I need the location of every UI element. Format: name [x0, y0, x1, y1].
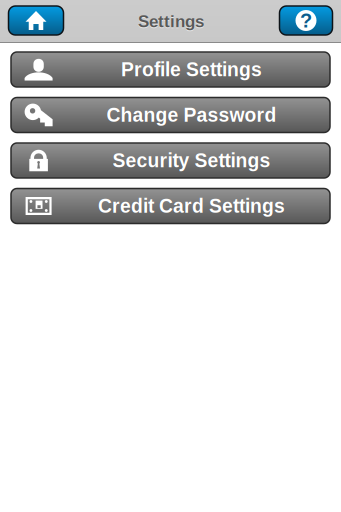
staticText: Credit Card Settings — [98, 195, 285, 217]
button[interactable]: Credit Card Settings — [11, 188, 330, 223]
staticText: Profile Settings — [121, 59, 262, 80]
staticText: Settings — [138, 13, 204, 32]
button[interactable]: Home — [8, 6, 63, 35]
staticText: Change Password — [106, 104, 276, 126]
staticText: ? — [300, 9, 312, 32]
staticText: Settings — [138, 12, 204, 31]
staticText: Security Settings — [112, 150, 270, 171]
button[interactable]: Security Settings — [11, 143, 330, 178]
button[interactable]: Change Password — [11, 97, 330, 132]
button[interactable]: Help — [279, 6, 332, 35]
button[interactable]: Profile Settings — [11, 52, 330, 87]
